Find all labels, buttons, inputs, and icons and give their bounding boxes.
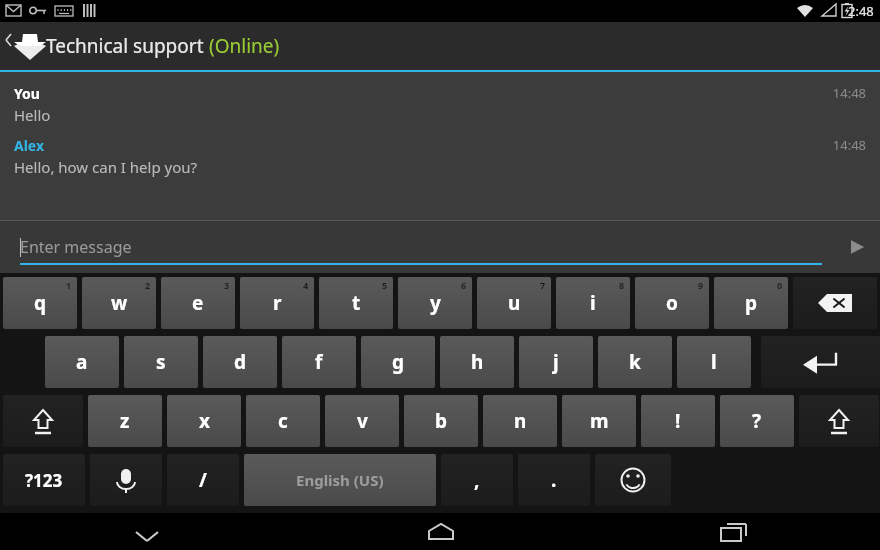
staticText: (Online): [209, 33, 280, 59]
button[interactable]: Voice input: [90, 454, 162, 506]
staticText: l: [711, 349, 717, 375]
staticText: !: [675, 408, 681, 434]
button[interactable]: b: [404, 395, 478, 447]
button[interactable]: /: [167, 454, 239, 506]
staticText: Hello: [14, 105, 51, 125]
staticText: k: [629, 349, 641, 375]
button[interactable]: Send: [834, 220, 880, 273]
staticText: 7: [540, 279, 546, 291]
staticText: w: [111, 290, 128, 316]
button[interactable]: g: [361, 336, 435, 388]
button[interactable]: Shift: [3, 395, 83, 447]
button[interactable]: s: [124, 336, 198, 388]
staticText: g: [392, 349, 405, 375]
button[interactable]: Backspace: [793, 277, 877, 329]
button[interactable]: e: [161, 277, 235, 329]
staticText: ,: [474, 467, 480, 493]
staticText: f: [315, 349, 323, 375]
staticText: b: [435, 408, 448, 434]
button[interactable]: z: [88, 395, 162, 447]
staticText: You: [14, 84, 40, 103]
button[interactable]: Technical support: [0, 22, 880, 70]
button[interactable]: o: [635, 277, 709, 329]
staticText: Alex: [14, 136, 45, 155]
button[interactable]: t: [319, 277, 393, 329]
button[interactable]: r: [240, 277, 314, 329]
button[interactable]: Emoji: [595, 454, 671, 506]
button[interactable]: w: [82, 277, 156, 329]
staticText: x: [199, 408, 210, 434]
button[interactable]: y: [398, 277, 472, 329]
staticText: English (US): [296, 470, 384, 490]
staticText: m: [590, 408, 609, 434]
staticText: ?123: [25, 469, 63, 492]
staticText: /: [199, 467, 207, 493]
staticText: j: [553, 349, 559, 375]
staticText: v: [357, 408, 368, 434]
staticText: 1: [66, 279, 72, 291]
staticText: q: [34, 290, 47, 316]
button[interactable]: i: [556, 277, 630, 329]
button[interactable]: ,: [441, 454, 513, 506]
staticText: i: [590, 290, 596, 316]
staticText: o: [666, 290, 678, 316]
staticText: 9: [698, 279, 704, 291]
staticText: 5: [382, 279, 388, 291]
button[interactable]: k: [598, 336, 672, 388]
button[interactable]: a: [45, 336, 119, 388]
button[interactable]: Recent apps: [587, 513, 880, 550]
staticText: p: [745, 290, 758, 316]
staticText: e: [192, 290, 204, 316]
button[interactable]: Enter: [761, 336, 880, 388]
button[interactable]: !: [641, 395, 715, 447]
button[interactable]: p: [714, 277, 788, 329]
staticText: z: [120, 408, 130, 434]
button[interactable]: d: [203, 336, 277, 388]
staticText: 2:48: [848, 2, 874, 20]
staticText: ?: [752, 408, 762, 434]
button[interactable]: Hide keyboard: [0, 513, 294, 550]
button[interactable]: Shift: [799, 395, 879, 447]
button[interactable]: v: [325, 395, 399, 447]
button[interactable]: n: [483, 395, 557, 447]
button[interactable]: Enter message: [20, 229, 822, 265]
staticText: c: [278, 408, 288, 434]
button[interactable]: u: [477, 277, 551, 329]
staticText: 0: [777, 279, 783, 291]
button[interactable]: ?: [720, 395, 794, 447]
staticText: 8: [619, 279, 625, 291]
button[interactable]: c: [246, 395, 320, 447]
staticText: n: [514, 408, 527, 434]
staticText: 3: [224, 279, 230, 291]
staticText: 4: [303, 279, 309, 291]
button[interactable]: h: [440, 336, 514, 388]
button[interactable]: m: [562, 395, 636, 447]
staticText: 2: [145, 279, 151, 291]
button[interactable]: j: [519, 336, 593, 388]
button[interactable]: .: [518, 454, 590, 506]
staticText: 14:48: [832, 136, 866, 154]
button[interactable]: Home: [294, 513, 587, 550]
staticText: Hello, how can I help you?: [14, 157, 198, 177]
staticText: 6: [461, 279, 467, 291]
staticText: t: [352, 290, 361, 316]
staticText: 14:48: [832, 84, 866, 102]
button[interactable]: f: [282, 336, 356, 388]
button[interactable]: ?123: [3, 454, 85, 506]
staticText: s: [156, 349, 166, 375]
staticText: u: [508, 290, 521, 316]
button[interactable]: l: [677, 336, 751, 388]
staticText: y: [430, 290, 441, 316]
staticText: r: [273, 290, 282, 316]
staticText: .: [551, 467, 557, 493]
staticText: Technical support: [46, 33, 209, 59]
staticText: h: [471, 349, 484, 375]
button[interactable]: q: [3, 277, 77, 329]
staticText: Enter message: [20, 236, 132, 258]
staticText: a: [76, 349, 88, 375]
staticText: d: [234, 349, 247, 375]
button[interactable]: English (US): [244, 454, 436, 506]
button[interactable]: x: [167, 395, 241, 447]
